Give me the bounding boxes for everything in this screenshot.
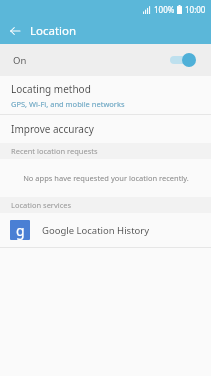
staticText: GPS, Wi-Fi, and mobile networks	[11, 99, 125, 109]
staticText: No apps have requested your location rec…	[23, 173, 189, 183]
button[interactable]: Improve accuracy	[0, 115, 211, 143]
staticText: 100%	[154, 4, 175, 15]
staticText: Improve accuracy	[11, 122, 94, 136]
button[interactable]: g	[0, 213, 211, 247]
staticText: Recent location requests	[11, 146, 98, 156]
staticText: On	[13, 54, 27, 67]
button[interactable]: Back	[0, 18, 30, 44]
staticText: 10:00	[185, 4, 206, 15]
staticText: Location	[30, 23, 77, 39]
staticText: Location services	[11, 200, 72, 210]
button[interactable]: On	[0, 44, 211, 76]
staticText: Google Location History	[42, 224, 150, 237]
staticText: Locating method	[11, 82, 91, 96]
button[interactable]: Locating method	[0, 76, 211, 114]
staticText: g	[16, 221, 25, 240]
